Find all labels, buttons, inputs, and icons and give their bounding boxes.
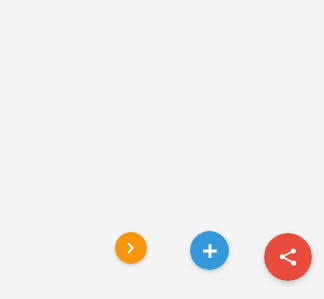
button[interactable]: Share: [264, 233, 312, 281]
button[interactable]: Add: [190, 231, 229, 270]
button[interactable]: Next: [115, 232, 147, 264]
